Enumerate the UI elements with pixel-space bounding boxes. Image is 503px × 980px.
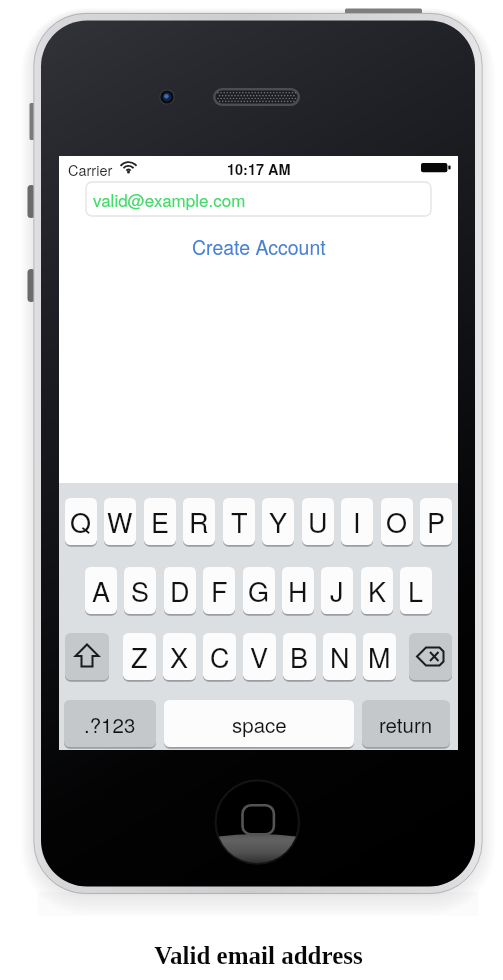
staticText: C [210,637,230,676]
staticText: E [151,502,170,541]
staticText: O [386,502,408,541]
staticText: X [170,637,189,676]
button[interactable]: Q [65,498,97,545]
button[interactable]: Shift [65,633,109,680]
button[interactable]: S [124,567,156,614]
button[interactable]: X [163,633,196,680]
staticText: .?123 [84,709,136,738]
button[interactable]: valid@example.com [86,182,431,216]
staticText: M [368,637,391,676]
staticText: T [231,502,248,541]
staticText: Valid email address [154,942,363,970]
button[interactable]: W [104,498,136,545]
button[interactable]: D [164,567,196,614]
staticText: I [353,502,361,541]
staticText: S [131,571,150,610]
staticText: A [92,571,111,610]
staticText: space [232,709,287,738]
button[interactable]: C [203,633,236,680]
button[interactable]: O [381,498,413,545]
button[interactable]: F [203,567,235,614]
button[interactable]: T [223,498,255,545]
staticText: G [248,571,270,610]
button[interactable]: return [362,700,450,747]
staticText: Y [269,502,288,541]
button[interactable]: M [363,633,396,680]
staticText: Create Account [192,233,326,261]
button[interactable]: R [183,498,215,545]
button[interactable]: Backspace [409,633,452,680]
staticText: W [107,502,133,541]
staticText: Q [70,502,92,541]
staticText: D [170,571,190,610]
button[interactable]: E [144,498,176,545]
staticText: Z [131,637,148,676]
button[interactable]: P [420,498,452,545]
staticText: L [408,571,424,610]
staticText: N [330,637,350,676]
staticText: 10:17 AM [227,159,291,180]
staticText: K [368,571,387,610]
button[interactable]: Create Account [184,229,334,265]
staticText: J [330,571,344,610]
staticText: return [379,709,433,738]
staticText: valid@example.com [93,187,246,211]
staticText: F [211,571,228,610]
button[interactable]: space [164,700,354,747]
staticText: R [189,502,209,541]
button[interactable]: J [321,567,353,614]
button[interactable]: I [341,498,373,545]
button[interactable]: .?123 [64,700,156,747]
button[interactable]: H [282,567,314,614]
button[interactable]: B [283,633,316,680]
button[interactable]: Z [123,633,156,680]
button[interactable]: K [361,567,393,614]
staticText: Carrier [68,159,113,180]
staticText: B [290,637,309,676]
button[interactable]: G [243,567,275,614]
button[interactable]: L [400,567,432,614]
button[interactable]: A [85,567,117,614]
button[interactable]: U [302,498,334,545]
button[interactable]: N [323,633,356,680]
button[interactable]: V [243,633,276,680]
staticText: P [427,502,446,541]
staticText: U [308,502,328,541]
staticText: V [250,637,269,676]
staticText: H [288,571,308,610]
button[interactable]: Y [262,498,294,545]
